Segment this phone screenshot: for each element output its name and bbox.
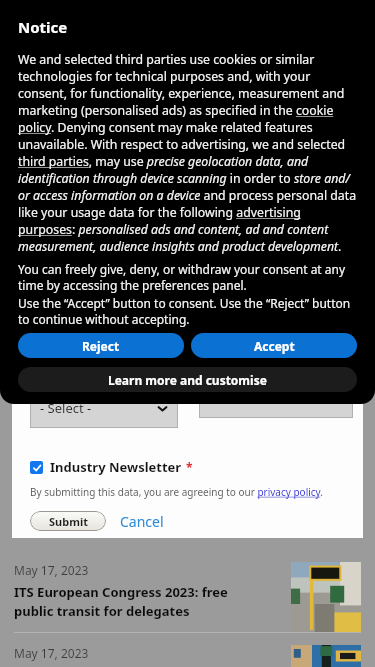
staticText: You can freely give, deny, or withdraw y… <box>18 261 357 294</box>
other: Open dropdown <box>157 403 168 414</box>
staticText: May 17, 2023 <box>14 562 89 578</box>
staticText: Submit <box>49 514 88 529</box>
button[interactable]: Reject <box>18 333 184 358</box>
button[interactable]: Cancel <box>120 512 164 531</box>
button[interactable]: Submit <box>30 511 106 531</box>
staticText: Industry Newsletter <box>50 458 182 476</box>
button[interactable]: Accept <box>191 333 357 358</box>
button[interactable]: - Select - <box>199 378 353 418</box>
staticText: Reject <box>82 338 120 354</box>
staticText: ITS European Congress 2023: free public … <box>14 583 228 620</box>
button[interactable]: - Select - <box>30 388 178 428</box>
staticText: Use the “Accept” button to consent. Use … <box>18 295 357 328</box>
staticText: Notice <box>18 17 68 37</box>
button[interactable]: Industry Newsletter <box>30 458 193 476</box>
button[interactable]: May 17, 2023 <box>14 645 361 667</box>
staticText: - Select - <box>40 399 92 417</box>
button[interactable]: Learn more and customise <box>18 367 357 392</box>
staticText: May 17, 2023 <box>14 645 89 661</box>
staticText: Accept <box>254 338 295 354</box>
staticText: - Select - <box>209 389 261 407</box>
button[interactable]: May 17, 2023 <box>14 562 361 632</box>
staticText: * <box>186 459 193 475</box>
staticText: Learn more and customise <box>108 372 267 388</box>
staticText: We and selected third parties use cookie… <box>18 51 357 255</box>
staticText: Cancel <box>120 512 164 531</box>
staticText: By submitting this data, you are agreein… <box>30 485 323 499</box>
